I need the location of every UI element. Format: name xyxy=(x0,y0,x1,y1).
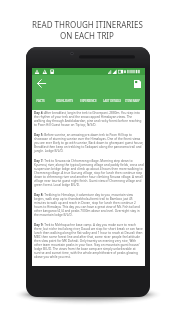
staticText: READ THROUGH ITINERARIES xyxy=(32,19,143,30)
button[interactable]: HIGHLIGHTS xyxy=(52,91,76,110)
button[interactable]: Back xyxy=(35,77,48,90)
button[interactable]: FACTS xyxy=(28,91,52,110)
staticText: Day 4: After breakfast, begin the trek t… xyxy=(34,111,144,127)
staticText: Day 5: Before sunrise, an amazing pre-da… xyxy=(34,133,144,153)
staticText: ON EACH TRIP xyxy=(60,30,114,41)
staticText: FACTS xyxy=(36,99,45,103)
staticText: HIGHLIGHTS xyxy=(56,99,73,103)
staticText: EXPERIENCE xyxy=(80,99,97,103)
staticText: Day 9: Trek to Mchhapuchre base camp. A … xyxy=(34,223,144,259)
staticText: LAST DETAILS xyxy=(103,99,121,103)
button[interactable]: ITINERARY xyxy=(124,91,141,110)
button[interactable]: LAST DETAILS xyxy=(100,91,124,110)
button[interactable]: Itinerary notes xyxy=(131,77,144,90)
staticText: Day 7: Trek to Sinuwa via Chhomrong vill… xyxy=(34,159,144,187)
button[interactable]: EXPERIENCE xyxy=(76,91,100,110)
staticText: Day 8: Trekking to Himalaya, it adventur… xyxy=(34,193,144,217)
staticText: ITINERARY xyxy=(125,99,140,103)
